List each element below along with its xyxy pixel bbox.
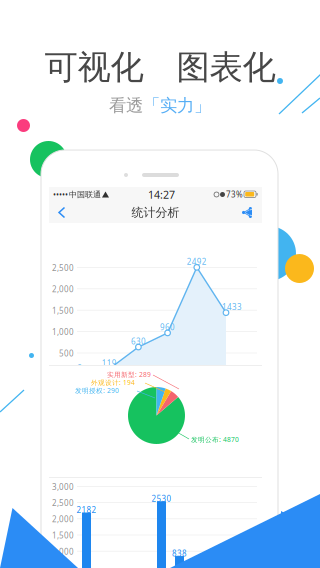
staticText: 1433 xyxy=(222,302,242,312)
staticText: 1,000 xyxy=(52,327,74,337)
staticText: 实用新型: 289 xyxy=(107,370,151,379)
button[interactable]: Back xyxy=(52,202,71,222)
staticText: 2492 xyxy=(187,256,207,267)
staticText: 2,500 xyxy=(52,498,74,508)
staticText: 2013 xyxy=(126,379,146,389)
staticText: 14:27 xyxy=(148,187,175,202)
staticText: 「实力」 xyxy=(143,95,211,116)
staticText: 2011 xyxy=(68,379,88,389)
staticText: 发明公布: 4870 xyxy=(191,435,239,444)
staticText: 119 xyxy=(102,358,117,368)
staticText: 统计分析 xyxy=(131,205,179,220)
staticText: 2182 xyxy=(76,504,96,515)
staticText: 3 xyxy=(77,363,82,373)
staticText: 1,500 xyxy=(52,530,74,541)
staticText: ••••• xyxy=(53,189,68,200)
staticText: 外观设计: 194 xyxy=(91,378,135,387)
staticText: 看透 xyxy=(109,95,143,116)
staticText: 960 xyxy=(160,322,175,332)
staticText: 1,000 xyxy=(52,546,74,557)
staticText: 73% xyxy=(226,189,243,200)
staticText: 可视化 图表化 xyxy=(44,47,275,88)
staticText: 中国联通 xyxy=(69,190,101,199)
button[interactable]: Share xyxy=(235,202,259,223)
staticText: 2012 xyxy=(97,379,117,389)
staticText: 2,000 xyxy=(52,284,74,294)
staticText: 3,000 xyxy=(52,481,74,492)
staticText: 2530 xyxy=(151,493,171,504)
staticText: 2,500 xyxy=(52,262,74,273)
staticText: 500 xyxy=(59,348,74,359)
staticText: 2,000 xyxy=(52,514,74,524)
staticText: 发明授权: 290 xyxy=(75,386,119,395)
staticText: 1,500 xyxy=(52,305,74,316)
staticText: 2014 xyxy=(156,379,176,389)
staticText: 838 xyxy=(172,548,187,559)
staticText: 630 xyxy=(131,336,146,347)
